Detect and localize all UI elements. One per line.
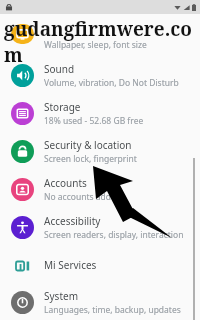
button[interactable]: Storage — [0, 94, 200, 132]
staticText: Screen readers, display, interaction con… — [44, 229, 200, 241]
button[interactable]: System — [0, 284, 200, 320]
button[interactable]: Accessibility — [0, 208, 200, 246]
staticText: Sound — [44, 62, 75, 76]
staticText: gudangfirmwere.com — [4, 16, 200, 68]
staticText: Storage — [44, 100, 81, 114]
staticText: No accounts added — [44, 191, 121, 203]
button[interactable]: Mi Services — [0, 246, 200, 284]
staticText: 18% used - 52.68 GB free — [44, 115, 144, 127]
staticText: Security & location — [44, 138, 132, 152]
button[interactable]: Sound — [0, 56, 200, 94]
staticText: System — [44, 289, 78, 303]
staticText: Screen lock, fingerprint — [44, 153, 137, 165]
staticText: Accounts — [44, 176, 87, 190]
staticText: Mi Services — [44, 258, 97, 272]
staticText: Volume, vibration, Do Not Disturb — [44, 77, 179, 89]
staticText: Accessibility — [44, 214, 101, 228]
button[interactable]: Accounts — [0, 170, 200, 208]
button[interactable]: Wallpaper, sleep, font size — [0, 36, 200, 56]
staticText: Languages, time, backup, updates — [44, 304, 181, 316]
staticText: Wallpaper, sleep, font size — [44, 39, 147, 51]
button[interactable]: Security & location — [0, 132, 200, 170]
